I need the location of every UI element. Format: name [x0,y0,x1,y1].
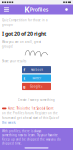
staticText: Create / sweep something [18,98,55,102]
button[interactable]: g [22,83,51,90]
button[interactable]: t [22,74,51,82]
staticText: Keep up and be shipped the way you do [2,138,61,141]
button[interactable]: f [22,66,51,73]
staticText: Profiles [30,6,49,13]
staticText: With profiles, there is always [2,129,41,133]
staticText: groups! [2,45,13,48]
staticText: Wow you are on a roll, great [2,40,41,44]
staticText: Note: This is the 1st Special Event [7,107,53,110]
staticText: K [24,4,29,15]
staticText: Facebook [30,68,42,71]
staticText: Quiz Competition for those in a [2,18,47,22]
staticText: I got 20 of 20 right [2,30,46,37]
staticText: forum and get a head start of this Quiz … [2,116,59,120]
staticText: g [23,84,26,89]
staticText: something new to learn. Try your favorit… [2,133,58,137]
staticText: on the Profiles forum. Register on the [2,111,58,115]
staticText: shipped time. [2,142,22,145]
button[interactable]: Menu [1,4,12,14]
staticText: Google+ [30,85,43,88]
staticText: groups? [2,23,13,26]
staticText: Share your results [2,59,26,63]
staticText: f [23,67,25,72]
button[interactable]: Account [61,4,72,14]
staticText: the week. [2,121,16,124]
staticText: t [23,75,25,81]
staticText: Twitter [32,76,41,80]
